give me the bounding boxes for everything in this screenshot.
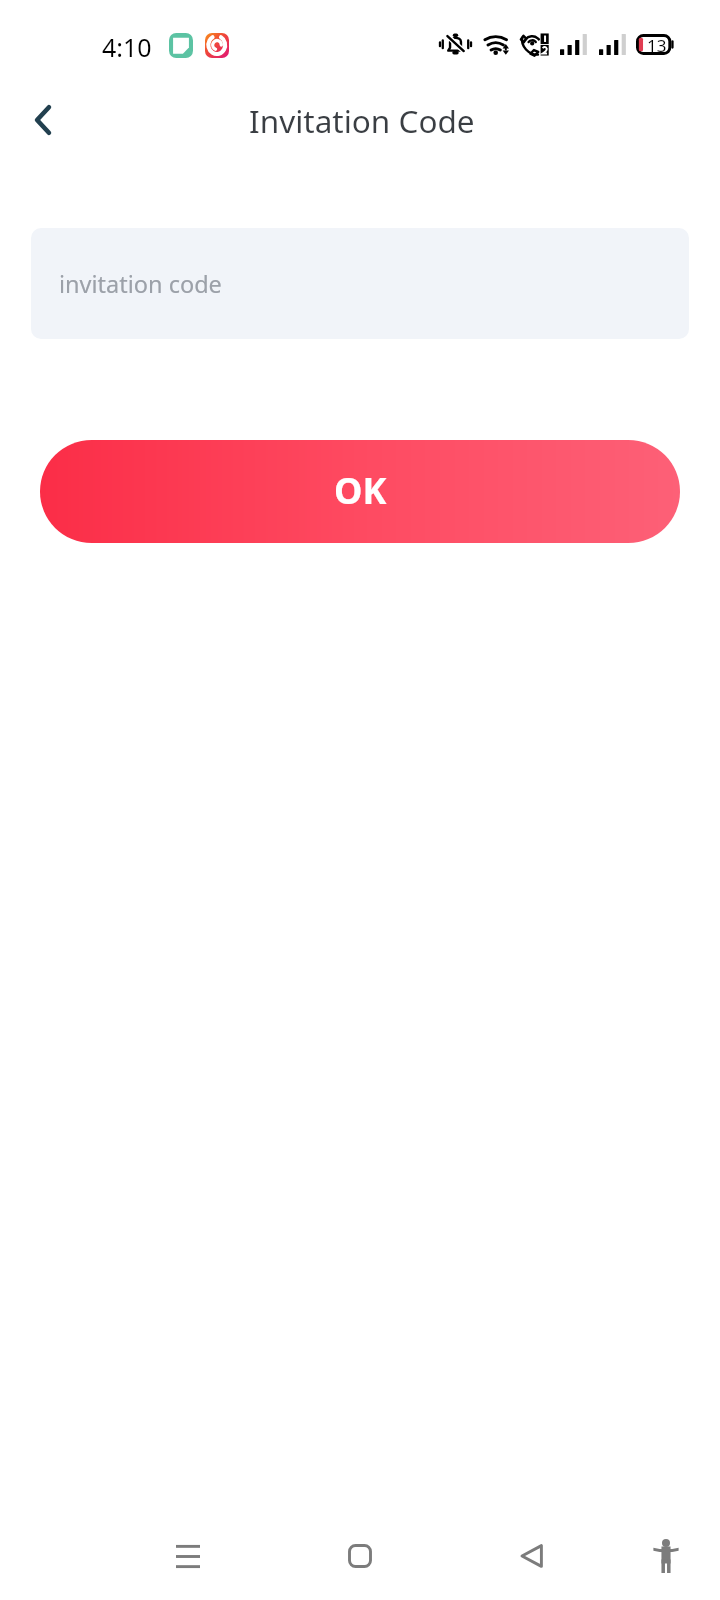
button[interactable]: Home — [320, 1516, 400, 1596]
button[interactable]: Accessibility — [626, 1516, 706, 1596]
staticText: 13 — [647, 34, 667, 55]
staticText: OK — [334, 466, 387, 515]
button[interactable]: invitation code — [31, 228, 689, 339]
staticText: 4:10 — [102, 30, 152, 64]
staticText: Invitation Code — [249, 99, 475, 142]
button[interactable]: Back — [491, 1516, 571, 1596]
button[interactable]: Back — [13, 90, 73, 150]
button[interactable]: OK — [40, 440, 680, 543]
staticText: invitation code — [59, 268, 222, 300]
button[interactable]: Recent apps — [148, 1516, 228, 1596]
